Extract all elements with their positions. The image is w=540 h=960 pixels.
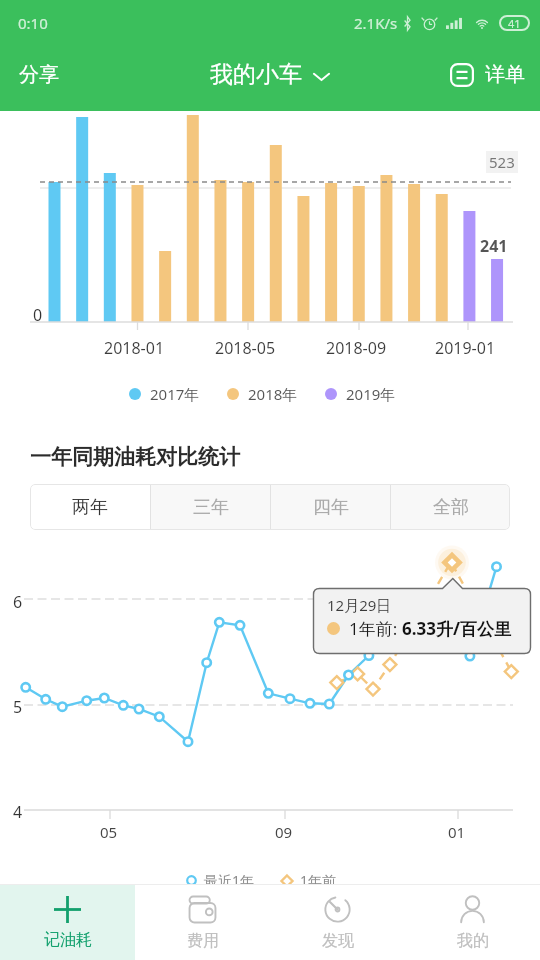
staticText: 费用: [187, 931, 219, 951]
button[interactable]: 三年: [151, 484, 270, 530]
button[interactable]: 详单: [438, 48, 540, 101]
staticText: 详单: [485, 62, 525, 87]
staticText: 2017年: [150, 384, 200, 404]
button[interactable]: 四年: [271, 484, 390, 530]
staticText: 记油耗: [44, 930, 92, 950]
staticText: 四年: [313, 496, 349, 519]
staticText: 523: [489, 152, 515, 172]
staticText: 4: [13, 801, 23, 823]
staticText: 2019年: [346, 384, 396, 404]
staticText: 全部: [433, 496, 469, 519]
staticText: 2018-09: [326, 337, 387, 359]
staticText: 2018-05: [215, 337, 276, 359]
button[interactable]: 发现: [270, 885, 405, 960]
staticText: 0: [33, 304, 43, 326]
staticText: 6.33升/百公里: [402, 617, 512, 640]
staticText: 1年前:: [349, 617, 402, 640]
button[interactable]: 全部: [391, 484, 510, 530]
button[interactable]: 我的小车: [204, 54, 337, 95]
button[interactable]: 分享: [0, 46, 78, 103]
button[interactable]: 记油耗: [0, 885, 135, 960]
staticText: 一年同期油耗对比统计: [30, 444, 240, 470]
button[interactable]: 我的: [405, 885, 540, 960]
staticText: 41: [508, 16, 521, 31]
staticText: 12月29日: [327, 595, 392, 615]
staticText: 09: [275, 822, 293, 842]
staticText: 01: [448, 822, 466, 842]
button[interactable]: 两年: [30, 484, 150, 530]
staticText: 5: [13, 696, 23, 718]
staticText: 分享: [19, 62, 59, 87]
staticText: 2018年: [248, 384, 298, 404]
staticText: 发现: [322, 931, 354, 951]
staticText: 6: [13, 591, 23, 613]
staticText: 2.1K/s: [354, 13, 398, 33]
button[interactable]: 费用: [135, 885, 270, 960]
staticText: 我的: [457, 931, 489, 951]
staticText: 2018-01: [104, 337, 165, 359]
staticText: 三年: [193, 496, 229, 519]
staticText: 0:10: [18, 13, 48, 33]
staticText: 我的小车: [210, 60, 302, 89]
staticText: 2019-01: [435, 337, 496, 359]
staticText: 两年: [72, 496, 108, 519]
staticText: 05: [100, 822, 118, 842]
staticText: 1年前: [300, 871, 337, 890]
staticText: 241: [480, 235, 508, 257]
staticText: 最近1年: [204, 871, 255, 890]
